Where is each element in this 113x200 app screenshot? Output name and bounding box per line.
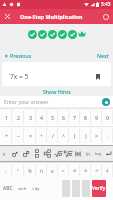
- button[interactable]: Completed step: [57, 29, 67, 39]
- staticText: .: [107, 132, 109, 139]
- button[interactable]: ): [80, 126, 91, 145]
- button[interactable]: ,: [0, 162, 12, 179]
- button[interactable]: sinh: [16, 179, 29, 198]
- button[interactable]: ≈: [91, 162, 102, 179]
- button[interactable]: 4: [36, 108, 47, 126]
- button[interactable]: Help: [98, 9, 113, 24]
- staticText: One-Step Multiplication: [20, 13, 83, 20]
- staticText: /: [52, 132, 54, 139]
- button[interactable]: absolute value: [73, 146, 83, 161]
- button[interactable]: ABC: [0, 179, 16, 198]
- button[interactable]: nth root: [63, 146, 73, 161]
- staticText: °: [17, 168, 19, 174]
- button[interactable]: Completed step: [67, 29, 77, 39]
- button[interactable]: +: [0, 126, 12, 145]
- button[interactable]: enter: [103, 146, 113, 161]
- staticText: Show Hints: [43, 88, 71, 95]
- button[interactable]: square: [9, 146, 20, 161]
- staticText: 9: [95, 114, 98, 121]
- staticText: 6: [62, 114, 65, 121]
- button[interactable]: 1: [0, 108, 12, 126]
- button[interactable]: ≥: [80, 162, 91, 179]
- button[interactable]: natural log: [83, 146, 93, 161]
- button[interactable]: e: [47, 162, 58, 179]
- staticText: ÷: [40, 132, 43, 139]
- staticText: ): [85, 132, 87, 139]
- staticText: ^: [62, 132, 65, 139]
- button[interactable]: Verify: [92, 180, 106, 197]
- button[interactable]: .: [102, 126, 113, 145]
- button[interactable]: mixed fraction: [42, 146, 53, 161]
- button[interactable]: √dy: [29, 179, 42, 198]
- button[interactable]: Next: [95, 50, 111, 61]
- button[interactable]: Completed step: [47, 29, 57, 39]
- staticText: (: [74, 132, 76, 139]
- button[interactable]: 0: [102, 108, 113, 126]
- button[interactable]: x variable: [0, 146, 9, 161]
- button[interactable]: 8: [80, 108, 91, 126]
- button[interactable]: 5: [47, 108, 58, 126]
- button[interactable]: ÷: [36, 126, 47, 145]
- staticText: ln: [86, 151, 90, 157]
- button[interactable]: (: [69, 126, 80, 145]
- staticText: 0: [106, 114, 109, 121]
- button[interactable]: fraction: [31, 146, 42, 161]
- staticText: Verify: [92, 185, 106, 192]
- button[interactable]: ≠: [102, 162, 113, 179]
- button[interactable]: 3: [24, 108, 36, 126]
- button[interactable]: 9: [91, 108, 102, 126]
- staticText: Next: [97, 52, 109, 59]
- staticText: √dy: [32, 186, 40, 192]
- staticText: 5:43: [101, 1, 111, 8]
- staticText: %: [28, 168, 32, 174]
- button[interactable]: Completed step: [37, 29, 47, 39]
- staticText: ≥: [84, 168, 88, 173]
- button[interactable]: =: [91, 126, 102, 145]
- button[interactable]: 7: [69, 108, 80, 126]
- button[interactable]: %: [24, 162, 36, 179]
- button[interactable]: Goal: [77, 29, 87, 39]
- staticText: x: [3, 151, 6, 157]
- button[interactable]: Submit answer: [102, 98, 110, 106]
- staticText: =: [95, 132, 98, 139]
- staticText: 2: [17, 114, 20, 121]
- button[interactable]: logarithm: [93, 146, 103, 161]
- staticText: Previous: [10, 52, 32, 59]
- staticText: 3: [29, 114, 32, 121]
- button[interactable]: Previous: [2, 50, 34, 61]
- button[interactable]: Show Hints: [40, 87, 74, 96]
- button[interactable]: ×: [24, 126, 36, 145]
- button[interactable]: −: [12, 126, 24, 145]
- button[interactable]: Bookmark: [93, 72, 103, 82]
- button[interactable]: ≤: [69, 162, 80, 179]
- button[interactable]: ^: [58, 126, 69, 145]
- button[interactable]: /: [47, 126, 58, 145]
- staticText: ≠: [106, 168, 109, 174]
- staticText: e: [51, 168, 54, 174]
- staticText: +: [5, 132, 8, 139]
- button[interactable]: power: [20, 146, 31, 161]
- staticText: 8: [84, 114, 87, 121]
- staticText: 5: [51, 114, 54, 121]
- staticText: 4: [40, 114, 43, 121]
- button[interactable]: 2: [12, 108, 24, 126]
- staticText: ≈: [95, 168, 99, 173]
- staticText: ,: [5, 168, 7, 174]
- staticText: ×: [29, 132, 32, 139]
- button[interactable]: °: [12, 162, 24, 179]
- staticText: 7: [73, 114, 76, 121]
- button[interactable]: square root: [53, 146, 63, 161]
- button[interactable]: π: [36, 162, 47, 179]
- staticText: log: [95, 151, 102, 157]
- staticText: 1: [5, 114, 8, 121]
- button[interactable]: <: [58, 162, 69, 179]
- staticText: ≤: [73, 168, 77, 173]
- button[interactable]: 6: [58, 108, 69, 126]
- staticText: −: [17, 132, 20, 139]
- button[interactable]: Close: [0, 9, 14, 24]
- staticText: Enter your answer: [4, 98, 49, 105]
- button[interactable]: Completed step: [27, 29, 37, 39]
